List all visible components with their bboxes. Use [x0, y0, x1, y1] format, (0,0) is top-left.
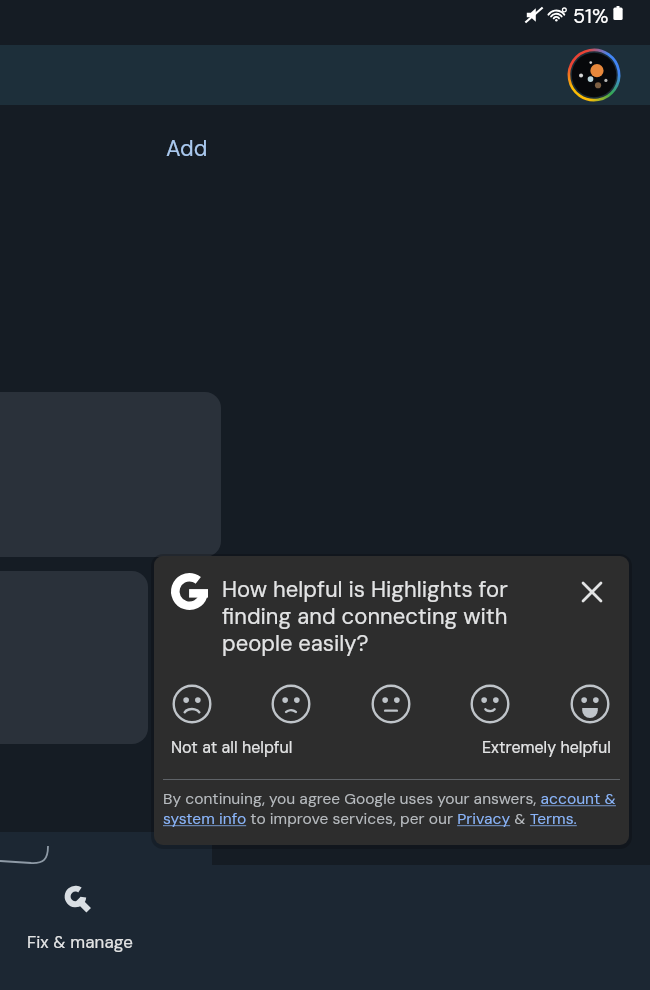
button[interactable]: Fix & manage: [26, 887, 133, 953]
button[interactable]: Rating 3 of 5: [367, 680, 415, 728]
staticText: 51%: [573, 3, 609, 29]
staticText: By continuing, you agree Google uses you…: [163, 789, 622, 829]
button[interactable]: Google account: [0, 45, 650, 105]
staticText: Not at all helpful: [171, 737, 293, 758]
button[interactable]: Rating 2 of 5: [267, 680, 315, 728]
staticText: Fix & manage: [27, 931, 133, 953]
button[interactable]: Rating 4 of 5: [466, 680, 514, 728]
button[interactable]: Add: [166, 134, 208, 163]
button[interactable]: Google account: [567, 48, 621, 102]
staticText: Add: [166, 134, 208, 163]
button[interactable]: Rating 5 of 5: [566, 680, 614, 728]
button[interactable]: Close: [576, 576, 608, 608]
staticText: Extremely helpful: [482, 737, 611, 758]
staticText: How helpful is Highlights for finding an…: [222, 575, 517, 657]
button[interactable]: Rating 1 of 5: [168, 680, 216, 728]
